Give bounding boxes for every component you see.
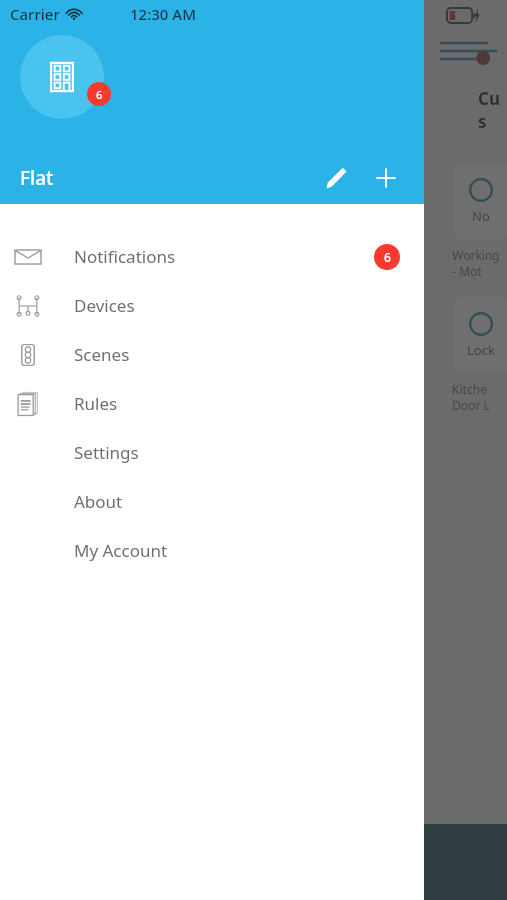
staticText: About	[74, 490, 123, 513]
button[interactable]: Devices	[0, 281, 424, 330]
button[interactable]: Settings	[0, 428, 424, 477]
button[interactable]: Edit	[315, 156, 359, 200]
staticText: Door L	[452, 397, 490, 413]
button[interactable]: Scenes	[0, 330, 424, 379]
button[interactable]: Add	[364, 156, 408, 200]
button[interactable]: Home profile	[20, 35, 104, 119]
staticText: Notifications	[74, 245, 176, 268]
staticText: Flat	[20, 165, 54, 191]
staticText: Working	[452, 247, 500, 263]
staticText: No	[472, 207, 490, 225]
staticText: - Mot	[452, 263, 482, 279]
staticText: 6	[96, 87, 103, 102]
staticText: Kitche	[452, 381, 487, 397]
staticText: My Account	[74, 539, 168, 562]
staticText: 6	[384, 249, 391, 265]
staticText: Carrier	[10, 4, 60, 24]
staticText: Lock	[467, 341, 495, 359]
staticText: Settings	[74, 441, 139, 464]
staticText: Scenes	[74, 343, 130, 366]
button[interactable]: About	[0, 477, 424, 526]
staticText: Cus	[478, 87, 507, 133]
button[interactable]: Flat	[0, 165, 62, 191]
button[interactable]: My Account	[0, 526, 424, 575]
button[interactable]: Notifications	[0, 232, 424, 281]
staticText: Rules	[74, 392, 118, 415]
staticText: Devices	[74, 294, 135, 317]
staticText: 12:30 AM	[130, 4, 196, 24]
button[interactable]: Rules	[0, 379, 424, 428]
